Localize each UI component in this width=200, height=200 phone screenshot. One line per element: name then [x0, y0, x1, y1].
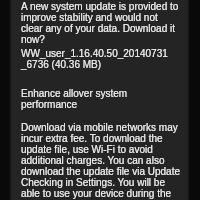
- staticText: Enhance allover system performance: [21, 88, 128, 110]
- staticText: A new system update is provided to impro…: [21, 1, 179, 45]
- staticText: Download via mobile networks may incur e…: [21, 122, 181, 200]
- staticText: WW_user_1.16.40.50_20140731 _6736 (40.36…: [21, 48, 168, 70]
